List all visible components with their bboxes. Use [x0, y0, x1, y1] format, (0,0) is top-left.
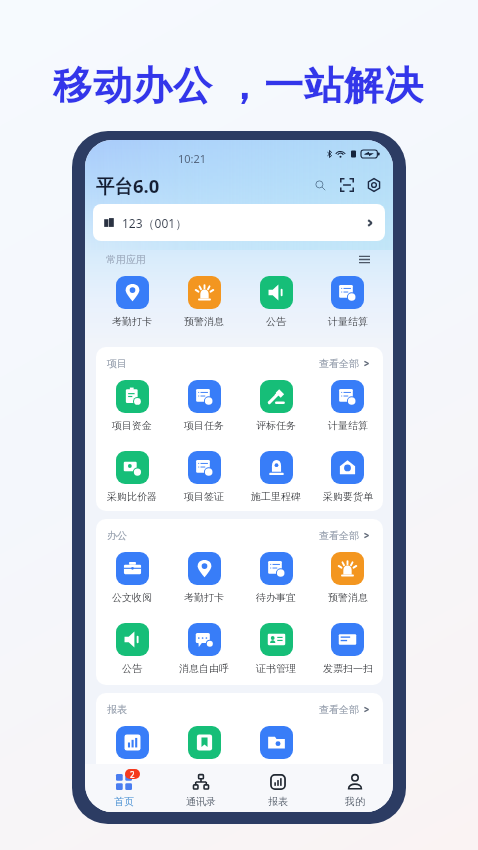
button[interactable]: 项目资金: [96, 380, 168, 432]
staticText: 评标任务: [256, 419, 296, 432]
button[interactable]: 查看全部: [317, 529, 372, 542]
button[interactable]: 评标任务: [240, 380, 312, 432]
button[interactable]: 预警消息: [312, 552, 383, 604]
staticText: 查看全部: [319, 357, 359, 370]
button[interactable]: Scan: [336, 174, 358, 196]
staticText: 办公: [107, 529, 127, 542]
button[interactable]: 公告: [96, 623, 168, 675]
button[interactable]: 查看全部: [317, 703, 372, 716]
staticText: 通讯录: [186, 795, 216, 808]
staticText: 公告: [266, 315, 286, 328]
button[interactable]: 采购比价器: [96, 451, 168, 503]
button[interactable]: 考勤打卡: [96, 276, 168, 328]
staticText: 查看全部: [319, 529, 359, 542]
staticText: 平台6.0: [96, 173, 160, 198]
button[interactable]: 考勤打卡: [168, 552, 240, 604]
staticText: 采购比价器: [107, 490, 157, 503]
staticText: 公文收阅: [112, 591, 152, 604]
staticText: 项目: [107, 357, 127, 370]
button[interactable]: 123（001）: [93, 204, 385, 241]
staticText: 证书管理: [256, 662, 296, 675]
button[interactable]: [168, 726, 240, 759]
staticText: 2: [130, 769, 135, 779]
button[interactable]: 发票扫一扫: [312, 623, 383, 675]
staticText: 预警消息: [184, 315, 224, 328]
staticText: 项目签证: [184, 490, 224, 503]
button[interactable]: 施工里程碑: [240, 451, 312, 503]
staticText: 预警消息: [328, 591, 368, 604]
button[interactable]: 采购要货单: [312, 451, 383, 503]
staticText: 项目任务: [184, 419, 224, 432]
button[interactable]: 预警消息: [168, 276, 240, 328]
button[interactable]: [240, 726, 312, 759]
staticText: 项目资金: [112, 419, 152, 432]
staticText: 计量结算: [328, 419, 368, 432]
staticText: 移动办公 ，一站解决: [53, 57, 425, 110]
button[interactable]: 公告: [240, 276, 312, 328]
staticText: 我的: [345, 795, 365, 808]
staticText: 待办事宜: [256, 591, 296, 604]
staticText: 报表: [268, 795, 288, 808]
button[interactable]: 查看全部: [317, 357, 372, 370]
staticText: 公告: [122, 662, 142, 675]
staticText: 10:21: [178, 151, 207, 166]
button[interactable]: 通讯录: [162, 764, 239, 812]
button[interactable]: 待办事宜: [240, 552, 312, 604]
staticText: 常用应用: [106, 253, 146, 266]
staticText: 消息自由呼: [179, 662, 229, 675]
button[interactable]: [96, 726, 168, 759]
button[interactable]: Settings: [363, 174, 385, 196]
button[interactable]: 计量结算: [312, 276, 383, 328]
button[interactable]: 项目任务: [168, 380, 240, 432]
button[interactable]: Search: [309, 174, 331, 196]
staticText: 查看全部: [319, 703, 359, 716]
button[interactable]: 2: [85, 764, 162, 812]
staticText: 考勤打卡: [112, 315, 152, 328]
staticText: 采购要货单: [323, 490, 373, 503]
staticText: 报表: [107, 703, 127, 716]
staticText: 123（001）: [122, 215, 188, 231]
button[interactable]: 公文收阅: [96, 552, 168, 604]
button[interactable]: 证书管理: [240, 623, 312, 675]
button[interactable]: 项目签证: [168, 451, 240, 503]
staticText: 施工里程碑: [251, 490, 301, 503]
button[interactable]: Menu: [356, 251, 372, 267]
staticText: 发票扫一扫: [323, 662, 373, 675]
button[interactable]: 报表: [239, 764, 316, 812]
staticText: 首页: [114, 795, 134, 808]
staticText: 考勤打卡: [184, 591, 224, 604]
staticText: 计量结算: [328, 315, 368, 328]
button[interactable]: 我的: [316, 764, 393, 812]
button[interactable]: 计量结算: [312, 380, 383, 432]
button[interactable]: 消息自由呼: [168, 623, 240, 675]
